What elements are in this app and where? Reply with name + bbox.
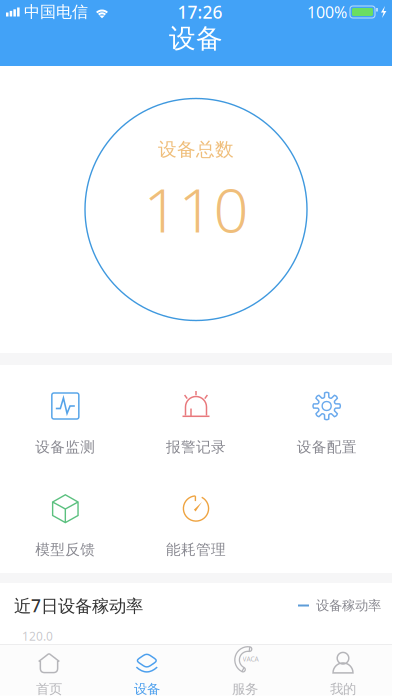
staticText: 模型反馈 bbox=[35, 540, 95, 558]
staticText: 120.0 bbox=[22, 628, 53, 644]
button[interactable]: 我的 bbox=[294, 645, 392, 696]
staticText: 设备 bbox=[134, 681, 160, 696]
staticText: VACA bbox=[242, 654, 258, 663]
staticText: 17:26 bbox=[177, 0, 222, 23]
button[interactable]: 服务 bbox=[196, 645, 294, 696]
button[interactable]: 模型反馈 bbox=[0, 482, 131, 586]
button[interactable]: 首页 bbox=[0, 645, 98, 696]
staticText: 设备总数 bbox=[158, 138, 234, 161]
staticText: 设备稼动率 bbox=[316, 597, 381, 614]
button[interactable]: 设备 bbox=[98, 645, 196, 696]
staticText: 中国电信 bbox=[24, 2, 88, 22]
staticText: 设备 bbox=[169, 22, 223, 55]
staticText: 首页 bbox=[36, 681, 62, 696]
staticText: 110 bbox=[143, 168, 248, 249]
button[interactable]: 报警记录 bbox=[131, 380, 261, 484]
button[interactable]: 设备监测 bbox=[0, 380, 131, 484]
staticText: 能耗管理 bbox=[166, 540, 226, 558]
button[interactable]: 设备配置 bbox=[261, 380, 392, 484]
button[interactable]: 能耗管理 bbox=[131, 482, 261, 586]
staticText: 我的 bbox=[330, 681, 356, 696]
staticText: 服务 bbox=[232, 681, 258, 696]
staticText: 设备监测 bbox=[35, 438, 95, 456]
staticText: 报警记录 bbox=[166, 438, 226, 456]
staticText: 近7日设备稼动率 bbox=[14, 594, 143, 617]
staticText: 设备配置 bbox=[297, 438, 357, 456]
staticText: 100% bbox=[307, 1, 347, 23]
